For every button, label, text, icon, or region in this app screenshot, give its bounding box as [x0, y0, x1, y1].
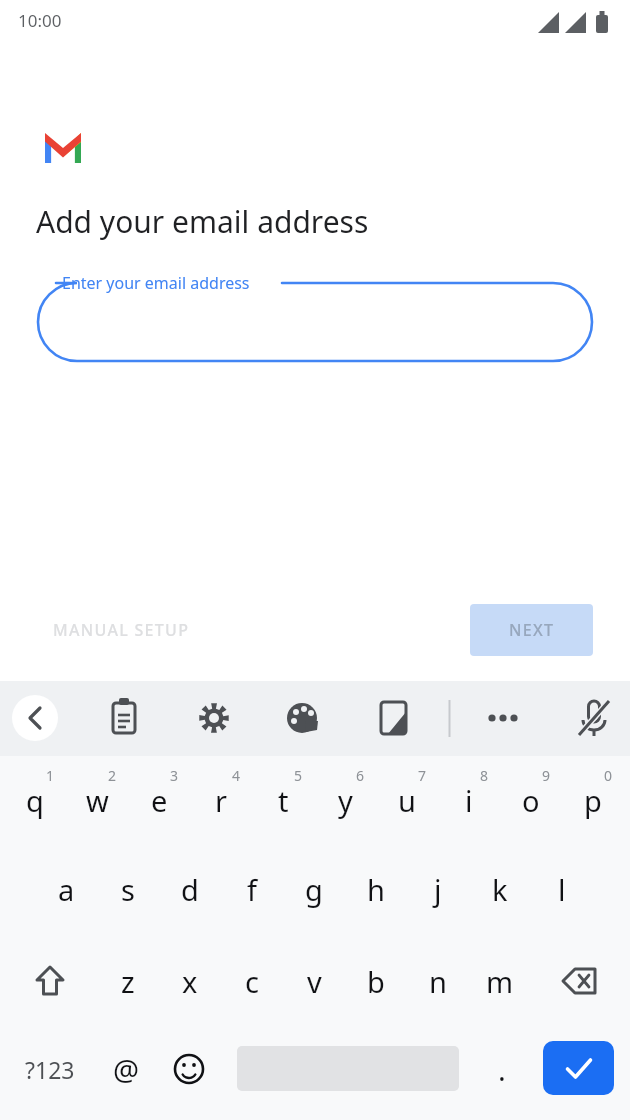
staticText: c: [245, 962, 259, 1001]
staticText: 8: [480, 766, 489, 785]
button[interactable]: .: [471, 1039, 533, 1099]
staticText: f: [247, 870, 257, 909]
button[interactable]: Enter your email address: [30, 268, 602, 374]
staticText: 4: [232, 766, 241, 785]
button[interactable]: f: [221, 859, 283, 919]
button[interactable]: Voice input off: [566, 690, 622, 746]
staticText: a: [58, 870, 75, 909]
button[interactable]: x: [159, 951, 221, 1011]
staticText: p: [584, 781, 602, 820]
staticText: NEXT: [509, 619, 555, 641]
staticText: k: [492, 870, 508, 909]
button[interactable]: MANUAL SETUP: [24, 604, 218, 656]
button[interactable]: y: [314, 770, 376, 830]
staticText: e: [151, 781, 168, 820]
button[interactable]: u: [376, 770, 438, 830]
staticText: u: [398, 781, 416, 820]
button[interactable]: One-handed mode: [365, 690, 421, 746]
button[interactable]: Settings: [186, 690, 242, 746]
button[interactable]: NEXT: [470, 604, 593, 656]
staticText: t: [278, 781, 289, 820]
staticText: h: [367, 870, 385, 909]
button[interactable]: ?123: [18, 1039, 82, 1099]
staticText: 6: [356, 766, 365, 785]
button[interactable]: m: [469, 951, 531, 1011]
staticText: j: [434, 870, 442, 909]
button[interactable]: w: [66, 770, 128, 830]
button[interactable]: Enter: [543, 1041, 614, 1095]
staticText: q: [26, 781, 44, 820]
button[interactable]: Emoji: [158, 1039, 220, 1099]
staticText: i: [465, 781, 473, 820]
button[interactable]: v: [283, 951, 345, 1011]
button[interactable]: z: [97, 951, 159, 1011]
button[interactable]: @: [95, 1039, 157, 1099]
staticText: m: [486, 962, 514, 1001]
staticText: l: [558, 870, 566, 909]
button[interactable]: d: [159, 859, 221, 919]
staticText: g: [305, 870, 323, 909]
staticText: ?123: [25, 1054, 75, 1085]
button[interactable]: l: [531, 859, 593, 919]
button[interactable]: r: [190, 770, 252, 830]
button[interactable]: o: [500, 770, 562, 830]
button[interactable]: h: [345, 859, 407, 919]
staticText: Add your email address: [36, 201, 369, 242]
button[interactable]: n: [407, 951, 469, 1011]
staticText: 10:00: [18, 9, 62, 32]
staticText: n: [429, 962, 447, 1001]
staticText: r: [215, 781, 227, 820]
button[interactable]: q: [4, 770, 66, 830]
staticText: 2: [108, 766, 117, 785]
staticText: z: [121, 962, 135, 1001]
button[interactable]: Backspace: [549, 951, 611, 1011]
staticText: 1: [46, 766, 55, 785]
button[interactable]: j: [407, 859, 469, 919]
staticText: 3: [170, 766, 179, 785]
staticText: o: [522, 781, 540, 820]
button[interactable]: Clipboard: [96, 690, 152, 746]
staticText: @: [113, 1050, 140, 1089]
button[interactable]: c: [221, 951, 283, 1011]
button[interactable]: b: [345, 951, 407, 1011]
button[interactable]: p: [562, 770, 624, 830]
staticText: x: [182, 962, 198, 1001]
staticText: 0: [604, 766, 613, 785]
button[interactable]: Back: [12, 695, 58, 741]
button[interactable]: a: [35, 859, 97, 919]
button[interactable]: s: [97, 859, 159, 919]
staticText: .: [498, 1050, 506, 1089]
staticText: 7: [418, 766, 427, 785]
button[interactable]: More options: [475, 690, 531, 746]
staticText: v: [307, 962, 322, 1001]
staticText: 5: [294, 766, 303, 785]
staticText: d: [181, 870, 199, 909]
button[interactable]: k: [469, 859, 531, 919]
button[interactable]: Shift: [19, 951, 81, 1011]
button[interactable]: t: [252, 770, 314, 830]
button[interactable]: i: [438, 770, 500, 830]
staticText: w: [86, 781, 109, 820]
staticText: y: [338, 781, 353, 820]
staticText: b: [367, 962, 385, 1001]
staticText: MANUAL SETUP: [53, 619, 190, 641]
button[interactable]: e: [128, 770, 190, 830]
staticText: s: [121, 870, 135, 909]
button[interactable]: Theme: [275, 690, 331, 746]
staticText: Enter your email address: [62, 272, 250, 294]
button[interactable]: g: [283, 859, 345, 919]
staticText: 9: [542, 766, 551, 785]
